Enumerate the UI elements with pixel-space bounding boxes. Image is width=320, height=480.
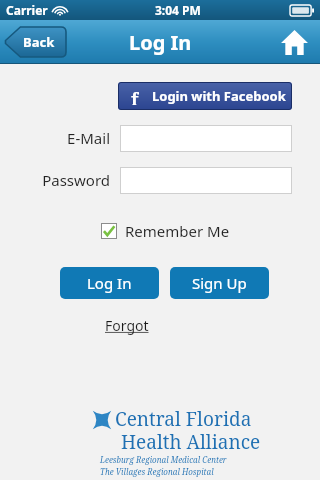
staticText: f xyxy=(131,87,139,105)
staticText: Back xyxy=(23,33,55,51)
staticText: Leesburg Regional Medical Center xyxy=(100,454,227,465)
staticText: The Villages Regional Hospital xyxy=(100,466,214,477)
staticText: Carrier xyxy=(6,2,48,18)
button[interactable]: Forgot Password? xyxy=(105,316,217,338)
button[interactable] xyxy=(120,125,292,152)
staticText: E-Mail xyxy=(40,128,110,148)
button[interactable]: Home xyxy=(276,24,312,60)
staticText: Log In xyxy=(87,273,132,293)
staticText: Login with Facebook xyxy=(152,87,286,105)
button[interactable]: Sign Up xyxy=(170,267,269,299)
staticText: 3:04 PM xyxy=(155,2,201,18)
staticText: Health Alliance xyxy=(121,429,261,455)
button[interactable]: Remember Me xyxy=(101,220,230,242)
button[interactable]: f xyxy=(118,82,292,110)
staticText: Remember Me xyxy=(125,221,230,241)
staticText: Password xyxy=(30,170,110,190)
staticText: Log In xyxy=(129,29,192,56)
button[interactable]: Back xyxy=(4,27,66,57)
staticText: Forgot Password? xyxy=(105,316,217,338)
staticText: Central Florida xyxy=(115,406,252,432)
button[interactable] xyxy=(120,167,292,194)
button[interactable]: Log In xyxy=(60,267,159,299)
staticText: Sign Up xyxy=(192,273,247,293)
